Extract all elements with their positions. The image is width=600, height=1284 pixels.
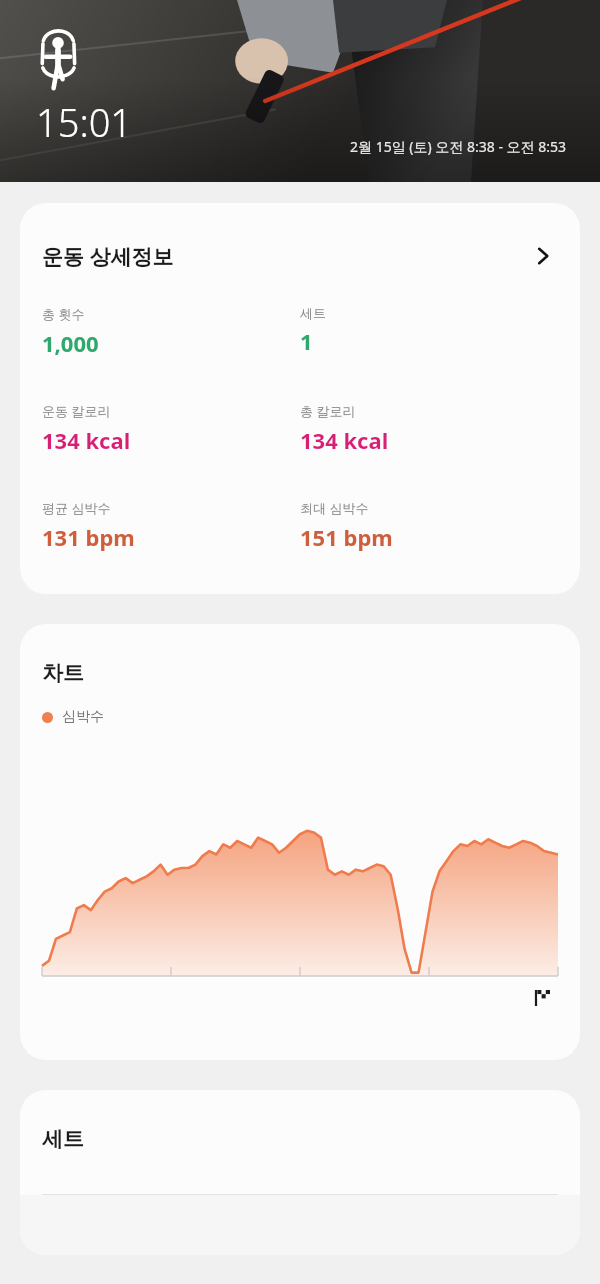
staticText: 1 bbox=[300, 326, 313, 356]
button[interactable]: 운동 상세정보 bbox=[20, 203, 580, 279]
staticText: 심박수 bbox=[62, 708, 104, 726]
staticText: 평균 심박수 bbox=[42, 499, 111, 517]
staticText: 운동 상세정보 bbox=[42, 242, 174, 271]
staticText: 차트 bbox=[42, 660, 84, 686]
staticText: 15:01 bbox=[36, 96, 133, 148]
staticText: 총 칼로리 bbox=[300, 402, 356, 420]
staticText: 131 bpm bbox=[42, 522, 135, 552]
staticText: 151 bpm bbox=[300, 522, 393, 552]
staticText: 134 kcal bbox=[42, 425, 131, 455]
staticText: 최대 심박수 bbox=[300, 499, 369, 517]
staticText: 2월 15일 (토) 오전 8:38 - 오전 8:53 bbox=[350, 137, 566, 156]
staticText: 세트 bbox=[300, 305, 326, 321]
staticText: 총 횟수 bbox=[42, 305, 85, 323]
staticText: 1,000 bbox=[42, 328, 99, 358]
button[interactable]: 운동 상세정보 열기 bbox=[528, 241, 558, 271]
staticText: 134 kcal bbox=[300, 425, 389, 455]
staticText: 운동 칼로리 bbox=[42, 402, 111, 420]
staticText: 세트 bbox=[42, 1126, 84, 1152]
